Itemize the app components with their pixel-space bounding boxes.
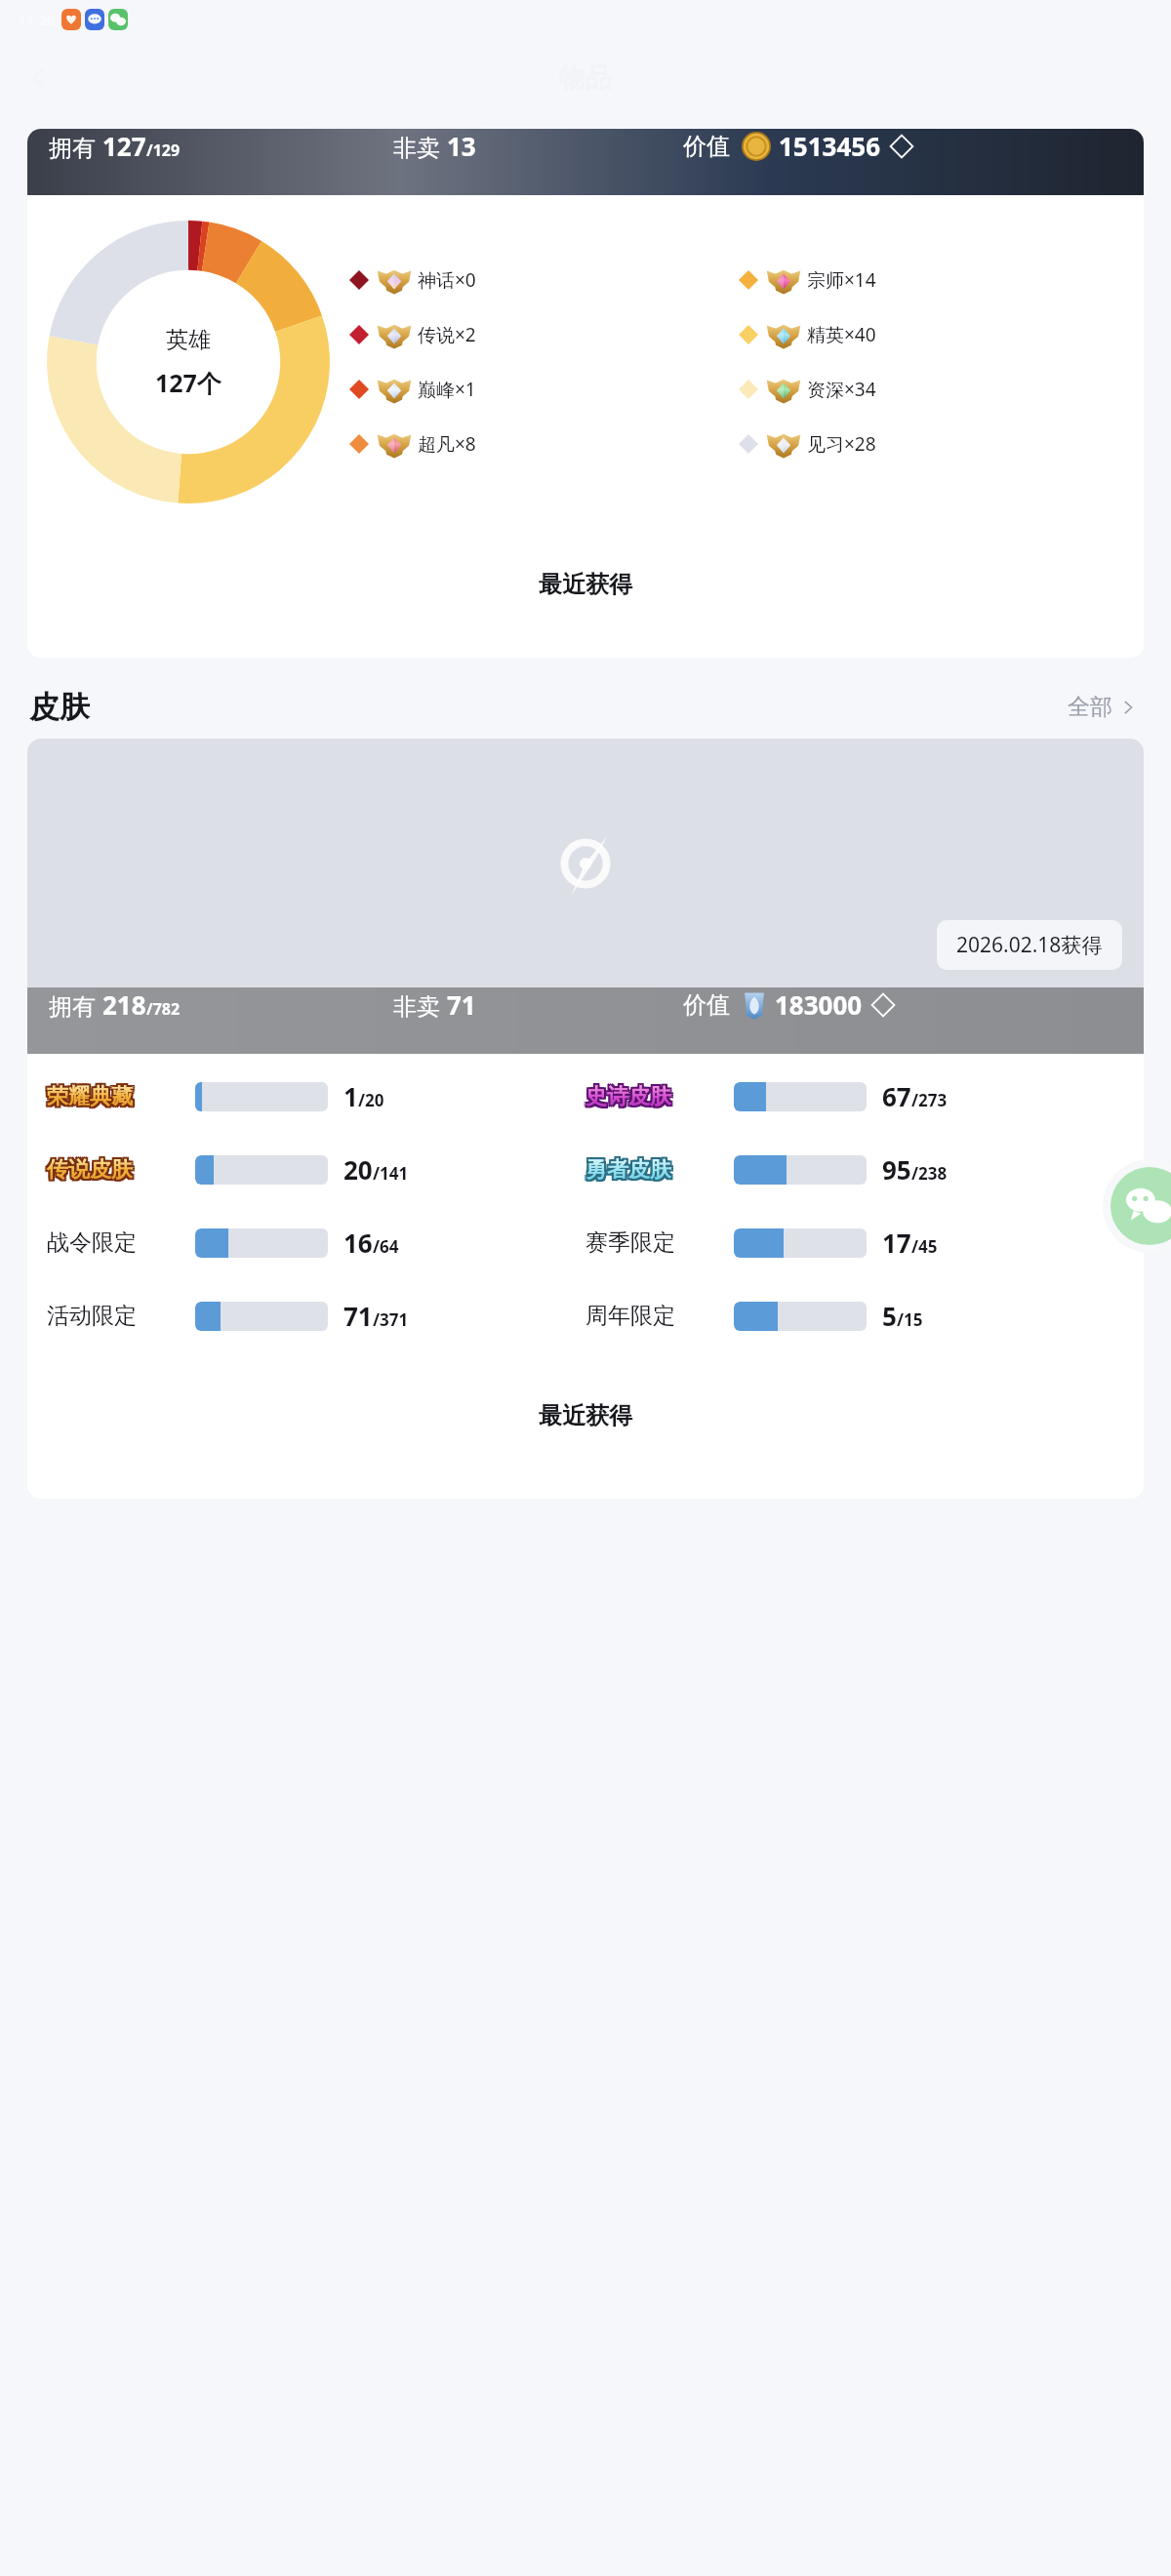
- button[interactable]: 全部: [1062, 687, 1142, 727]
- staticText: 荣耀典藏: [49, 1083, 135, 1110]
- staticText: 勇者皮肤: [587, 1154, 673, 1182]
- staticText: 史诗皮肤: [585, 1081, 671, 1108]
- staticText: 218: [102, 987, 146, 1022]
- staticText: 史诗皮肤: [587, 1081, 673, 1108]
- staticText: 价值: [683, 132, 730, 161]
- staticText: /782: [146, 998, 181, 1020]
- staticText: 非卖: [393, 131, 447, 163]
- staticText: 全部: [1068, 693, 1112, 721]
- staticText: 赛季限定: [585, 1228, 675, 1257]
- button[interactable]: 赛季限定: [585, 1226, 1124, 1260]
- staticText: 传说皮肤: [45, 1158, 131, 1186]
- staticText: 传说皮肤: [45, 1154, 131, 1182]
- staticText: 史诗皮肤: [585, 1083, 671, 1110]
- staticText: 资深×34: [807, 377, 876, 402]
- staticText: 2026.02.18获得: [956, 931, 1103, 959]
- staticText: 拥有: [49, 989, 102, 1022]
- button[interactable]: 勇者皮肤: [585, 1152, 1124, 1187]
- staticText: 精英×40: [807, 322, 876, 347]
- staticText: 勇者皮肤: [587, 1156, 673, 1184]
- staticText: 战令限定: [47, 1228, 137, 1257]
- button[interactable]: 周年限定: [585, 1299, 1124, 1333]
- staticText: 荣耀典藏: [49, 1085, 135, 1112]
- button[interactable]: 2026.02.18获得: [27, 739, 1144, 1499]
- staticText: 17: [882, 1226, 911, 1260]
- button[interactable]: 巅峰×1: [349, 375, 739, 404]
- staticText: 荣耀典藏: [47, 1085, 133, 1112]
- staticText: 勇者皮肤: [584, 1158, 669, 1186]
- button[interactable]: 活动限定: [47, 1299, 585, 1333]
- staticText: 史诗皮肤: [584, 1081, 669, 1108]
- staticText: 183000: [775, 987, 863, 1022]
- button[interactable]: 精英×40: [739, 320, 1128, 349]
- staticText: 传说皮肤: [49, 1158, 135, 1186]
- staticText: 勇者皮肤: [584, 1156, 669, 1184]
- staticText: 史诗皮肤: [585, 1085, 671, 1112]
- staticText: 非卖: [393, 989, 447, 1022]
- staticText: 传说皮肤: [47, 1156, 133, 1184]
- staticText: 95: [882, 1152, 911, 1187]
- staticText: 勇者皮肤: [584, 1154, 669, 1182]
- button[interactable]: 传说皮肤: [47, 1152, 585, 1187]
- button[interactable]: 传说×2: [349, 320, 739, 349]
- staticText: 荣耀典藏: [45, 1085, 131, 1112]
- staticText: 勇者皮肤: [587, 1158, 673, 1186]
- staticText: 荣耀典藏: [47, 1083, 133, 1110]
- staticText: /141: [373, 1162, 409, 1185]
- staticText: 皮肤: [29, 688, 90, 726]
- button[interactable]: 史诗皮肤: [585, 1079, 1124, 1113]
- staticText: /238: [911, 1162, 948, 1185]
- staticText: 荣耀典藏: [45, 1083, 131, 1110]
- staticText: 史诗皮肤: [584, 1085, 669, 1112]
- staticText: /45: [911, 1235, 938, 1258]
- button[interactable]: 宗师×14: [739, 265, 1128, 295]
- staticText: 勇者皮肤: [585, 1156, 671, 1184]
- button[interactable]: 神话×0: [349, 265, 739, 295]
- staticText: 传说皮肤: [49, 1154, 135, 1182]
- staticText: 127个: [155, 366, 222, 399]
- button[interactable]: Help: [1105, 129, 1144, 195]
- button[interactable]: WeChat: [1103, 1159, 1171, 1253]
- staticText: 传说皮肤: [47, 1158, 133, 1186]
- staticText: 荣耀典藏: [45, 1081, 131, 1108]
- staticText: 71: [447, 987, 476, 1022]
- staticText: 勇者皮肤: [585, 1154, 671, 1182]
- button[interactable]: 超凡×8: [349, 429, 739, 459]
- staticText: 超凡×8: [418, 431, 476, 457]
- staticText: 英雄: [166, 326, 211, 354]
- staticText: /64: [373, 1235, 399, 1258]
- staticText: 传说×2: [418, 322, 476, 347]
- staticText: 价值: [683, 990, 730, 1020]
- staticText: 周年限定: [585, 1302, 675, 1330]
- staticText: 见习×28: [807, 431, 876, 457]
- staticText: 活动限定: [47, 1302, 137, 1330]
- staticText: 13: [447, 129, 476, 163]
- staticText: 史诗皮肤: [587, 1085, 673, 1112]
- staticText: 史诗皮肤: [584, 1083, 669, 1110]
- button[interactable]: 荣耀典藏: [47, 1079, 585, 1113]
- staticText: /371: [373, 1308, 409, 1331]
- button[interactable]: 资深×34: [739, 375, 1128, 404]
- staticText: 1: [343, 1079, 358, 1113]
- staticText: 传说皮肤: [45, 1156, 131, 1184]
- button[interactable]: 见习×28: [739, 429, 1128, 459]
- button[interactable]: 拥有: [27, 129, 1144, 658]
- staticText: 67: [882, 1079, 911, 1113]
- staticText: 最近获得: [539, 1401, 632, 1430]
- staticText: 勇者皮肤: [585, 1158, 671, 1186]
- staticText: 巅峰×1: [418, 377, 476, 402]
- staticText: /15: [897, 1308, 923, 1331]
- button[interactable]: Help: [1105, 987, 1144, 1054]
- staticText: 1513456: [779, 129, 881, 163]
- button[interactable]: 战令限定: [47, 1226, 585, 1260]
- staticText: /129: [146, 140, 181, 161]
- staticText: 史诗皮肤: [587, 1083, 673, 1110]
- staticText: 传说皮肤: [47, 1154, 133, 1182]
- staticText: 20: [343, 1152, 373, 1187]
- staticText: 71: [343, 1299, 373, 1333]
